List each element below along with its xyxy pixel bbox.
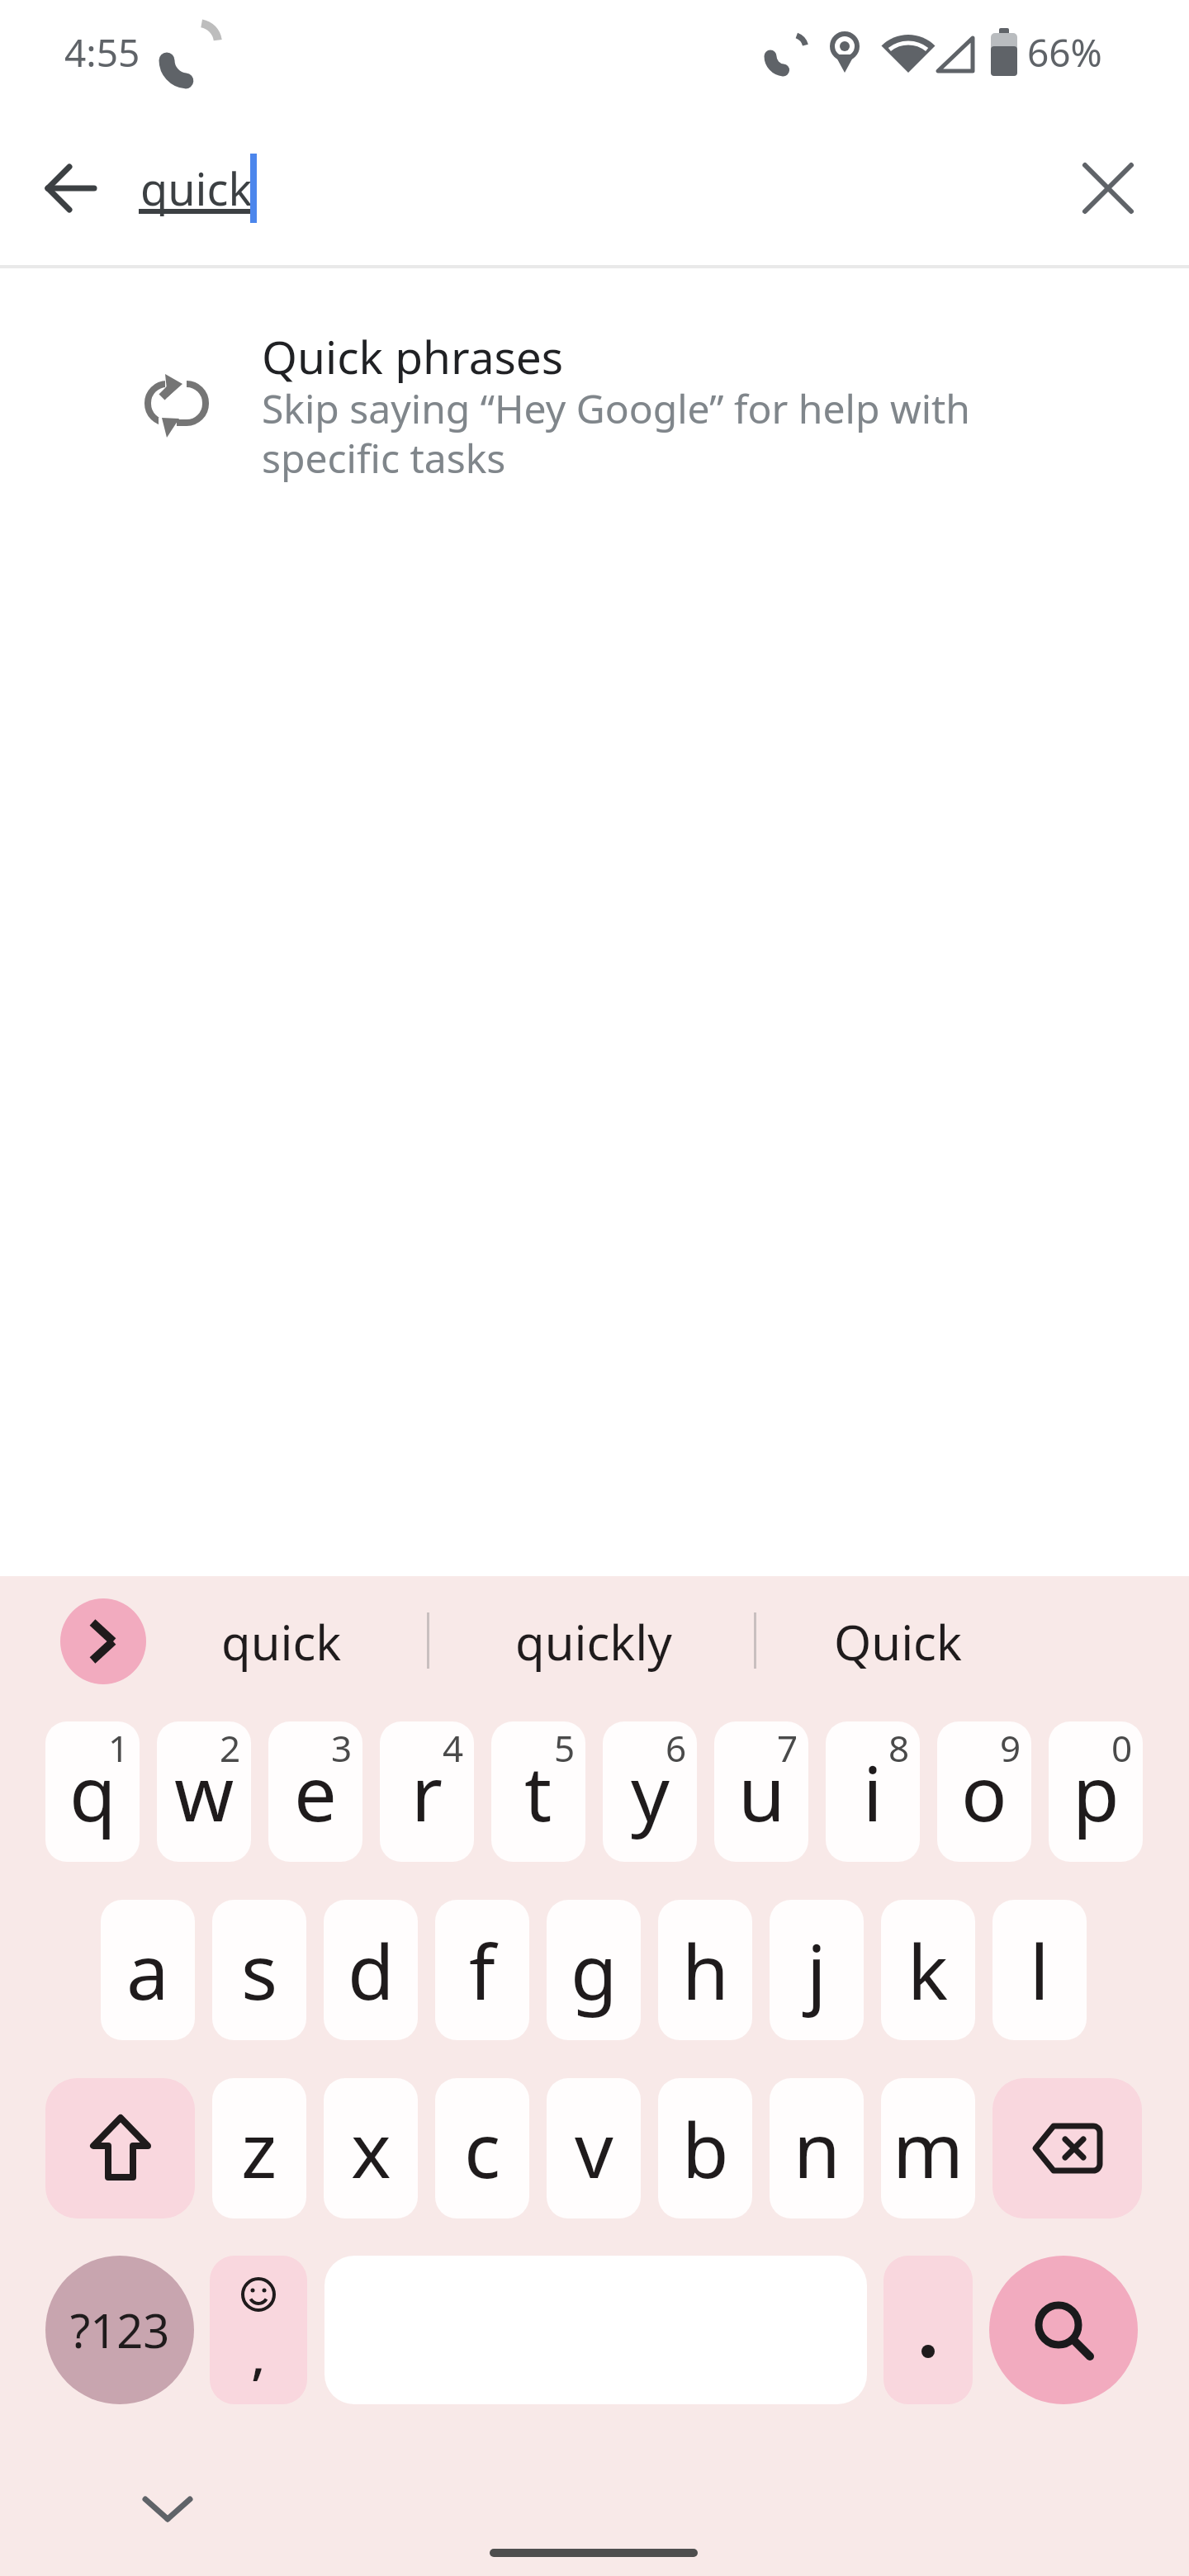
staticText: 66% <box>1027 26 1102 78</box>
staticText: u <box>738 1740 785 1844</box>
button[interactable] <box>883 2256 973 2404</box>
staticText: h <box>682 1919 729 2022</box>
staticText: 0 <box>1111 1723 1133 1773</box>
staticText: 6 <box>666 1723 687 1773</box>
staticText: o <box>961 1740 1007 1844</box>
staticText: p <box>1073 1740 1120 1844</box>
staticText: c <box>464 2097 501 2200</box>
button[interactable]: Quick <box>774 1598 1021 1684</box>
button[interactable]: q <box>45 1721 140 1862</box>
staticText: 5 <box>554 1723 576 1773</box>
staticText: Skip saying “Hey Google” for help with s… <box>262 381 971 485</box>
button[interactable] <box>1073 154 1143 223</box>
staticText: q <box>69 1740 116 1844</box>
staticText: x <box>351 2097 391 2200</box>
staticText: 7 <box>777 1723 798 1773</box>
staticText: r <box>411 1740 443 1844</box>
staticText: 8 <box>888 1723 910 1773</box>
button[interactable]: i <box>826 1721 920 1862</box>
staticText: Quick <box>834 1609 962 1674</box>
staticText: a <box>126 1919 169 2022</box>
staticText: , <box>251 2318 266 2384</box>
staticText: s <box>241 1919 278 2022</box>
staticText: l <box>1030 1919 1049 2022</box>
button[interactable] <box>60 1598 146 1684</box>
staticText: k <box>907 1919 949 2022</box>
button[interactable]: e <box>268 1721 362 1862</box>
button[interactable]: y <box>603 1721 697 1862</box>
button[interactable]: p <box>1049 1721 1143 1862</box>
staticText: v <box>575 2097 613 2200</box>
staticText: z <box>241 2097 277 2200</box>
button[interactable]: j <box>770 1900 864 2040</box>
button[interactable]: m <box>881 2078 975 2218</box>
button[interactable]: t <box>491 1721 585 1862</box>
button[interactable]: x <box>324 2078 418 2218</box>
staticText: b <box>682 2097 729 2200</box>
button[interactable] <box>33 150 109 226</box>
staticText: ?123 <box>70 2299 170 2361</box>
staticText: quickly <box>515 1609 672 1674</box>
staticText: y <box>631 1740 670 1844</box>
button[interactable]: v <box>547 2078 641 2218</box>
staticText: f <box>469 1919 495 2022</box>
staticText: quick <box>221 1609 342 1674</box>
staticText: 3 <box>331 1723 353 1773</box>
button[interactable]: w <box>157 1721 251 1862</box>
staticText: e <box>294 1740 337 1844</box>
button[interactable] <box>992 2078 1142 2218</box>
button[interactable]: d <box>324 1900 418 2040</box>
staticText: quick <box>140 158 253 219</box>
button[interactable]: o <box>937 1721 1031 1862</box>
staticText: d <box>348 1919 395 2022</box>
staticText: n <box>793 2097 841 2200</box>
staticText: w <box>174 1740 234 1844</box>
button[interactable]: s <box>212 1900 306 2040</box>
staticText: i <box>863 1740 883 1844</box>
button[interactable] <box>132 2473 203 2544</box>
button[interactable] <box>45 2078 195 2218</box>
button[interactable]: n <box>770 2078 864 2218</box>
button[interactable]: l <box>992 1900 1087 2040</box>
button[interactable]: quickly <box>470 1598 718 1684</box>
button[interactable]: k <box>881 1900 975 2040</box>
staticText: 4 <box>443 1723 464 1773</box>
button[interactable]: ?123 <box>45 2256 194 2404</box>
button[interactable]: h <box>658 1900 752 2040</box>
staticText: g <box>571 1919 618 2022</box>
staticText: 2 <box>220 1723 241 1773</box>
staticText: Quick phrases <box>262 325 564 383</box>
button[interactable]: b <box>658 2078 752 2218</box>
button[interactable]: , <box>210 2256 307 2404</box>
button[interactable]: a <box>101 1900 195 2040</box>
button[interactable]: u <box>714 1721 808 1862</box>
button[interactable]: z <box>212 2078 306 2218</box>
staticText: 1 <box>108 1723 130 1773</box>
staticText: 9 <box>1000 1723 1021 1773</box>
button[interactable]: quick <box>158 1598 405 1684</box>
button[interactable]: f <box>435 1900 529 2040</box>
staticText: m <box>893 2097 964 2200</box>
button[interactable] <box>989 2256 1138 2404</box>
staticText: 4:55 <box>64 26 140 78</box>
button[interactable]: r <box>380 1721 474 1862</box>
button[interactable]: g <box>547 1900 641 2040</box>
staticText: t <box>524 1740 552 1844</box>
button[interactable]: Quick phrases <box>0 297 1189 528</box>
button[interactable]: c <box>435 2078 529 2218</box>
staticText: j <box>807 1919 827 2022</box>
